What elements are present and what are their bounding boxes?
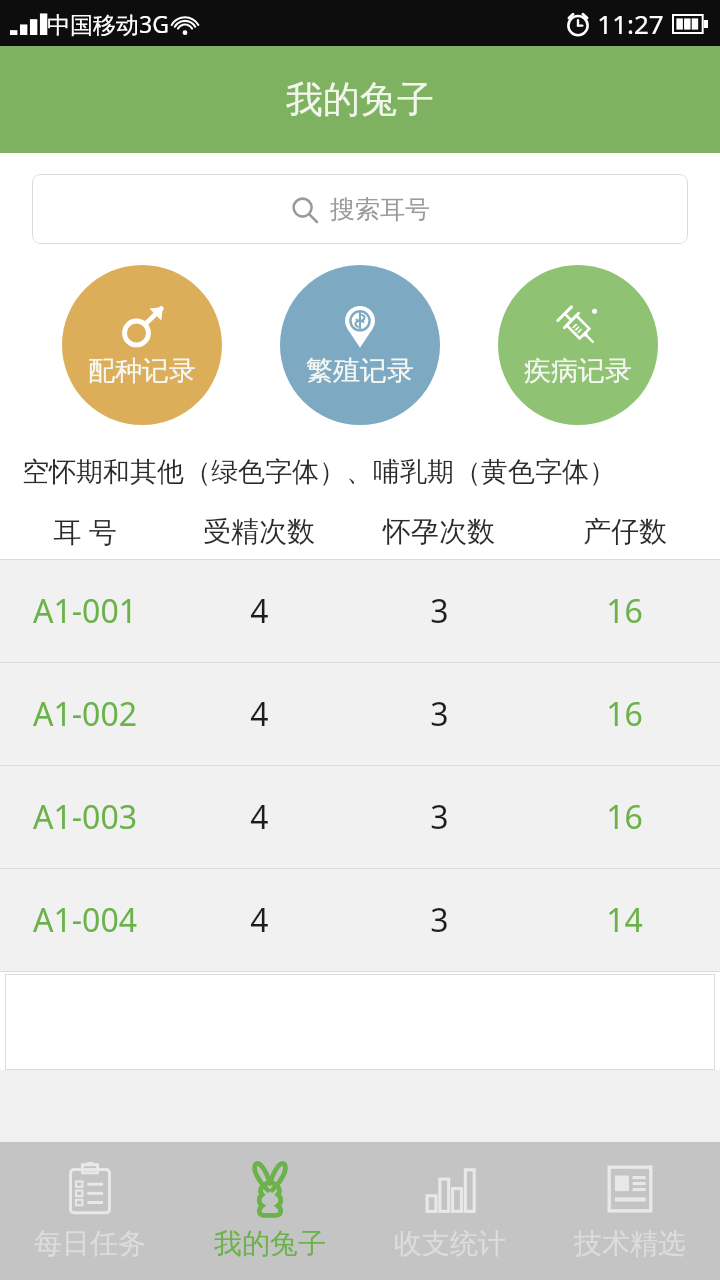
staticText: 4 [250,795,269,839]
staticText: 我的兔子 [214,1226,326,1261]
staticText: A1-001 [33,589,137,633]
staticText: 空怀期和其他（绿色字体）、哺乳期（黄色字体） [22,455,616,489]
staticText: 3 [430,589,449,633]
button[interactable]: 疾病记录 [498,265,658,425]
button[interactable]: A1-001 [0,560,720,662]
staticText: 疾病记录 [524,354,632,388]
staticText: 产仔数 [583,514,667,549]
staticText: 我的兔子 [286,76,434,123]
button[interactable]: 收支统计 [360,1142,540,1280]
staticText: 收支统计 [394,1226,506,1261]
button[interactable]: A1-004 [0,869,720,971]
button[interactable]: 繁殖记录 [280,265,440,425]
staticText: 耳 号 [53,512,117,550]
button[interactable]: 配种记录 [62,265,222,425]
staticText: 4 [250,589,269,633]
staticText: 配种记录 [88,354,196,388]
staticText: 中国移动3G [47,8,169,39]
staticText: 16 [606,795,643,839]
staticText: 怀孕次数 [383,514,495,549]
button[interactable]: 我的兔子 [180,1142,360,1280]
button[interactable]: A1-003 [0,766,720,868]
staticText: 3 [430,898,449,942]
staticText: A1-004 [33,898,137,942]
staticText: 繁殖记录 [306,354,414,388]
button[interactable]: 搜索耳号 [32,174,688,244]
staticText: 14 [606,898,643,942]
staticText: 11:27 [597,6,664,41]
button[interactable]: 每日任务 [0,1142,180,1280]
staticText: 4 [250,898,269,942]
staticText: 4 [250,692,269,736]
button[interactable]: 技术精选 [540,1142,720,1280]
staticText: 3 [430,795,449,839]
staticText: 16 [606,589,643,633]
staticText: 搜索耳号 [330,194,430,225]
staticText: 16 [606,692,643,736]
staticText: 受精次数 [203,514,315,549]
button[interactable]: A1-002 [0,663,720,765]
staticText: 每日任务 [34,1226,146,1261]
staticText: A1-003 [33,795,137,839]
staticText: A1-002 [33,692,137,736]
staticText: 技术精选 [574,1226,686,1261]
staticText: 3 [430,692,449,736]
